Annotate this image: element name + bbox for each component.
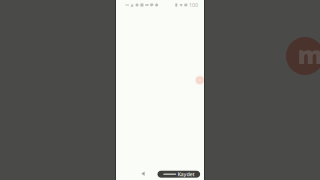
button[interactable]: Back (138, 168, 148, 179)
staticText: 100 (189, 1, 198, 9)
staticText: Kaydet (177, 171, 194, 178)
button[interactable]: Kaydet (157, 171, 200, 178)
staticText: m (297, 38, 320, 71)
